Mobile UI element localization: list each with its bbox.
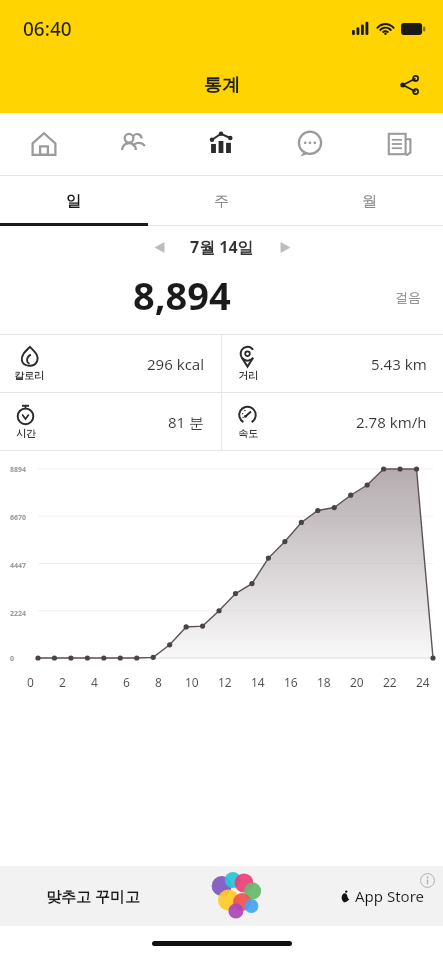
staticText: 8 [155,674,162,690]
button[interactable]: Friends [88,113,176,175]
staticText: 16 [284,674,298,690]
button[interactable]: Share [387,63,431,107]
button[interactable]: 월 [295,176,443,226]
button[interactable]: Statistics [176,113,265,175]
staticText: 일 [66,192,81,211]
button[interactable]: 속도 [222,393,443,450]
staticText: 주 [214,192,229,211]
button[interactable]: 맞추고 꾸미고 [0,866,443,926]
staticText: 296 kcal [147,354,205,374]
staticText: 18 [317,674,331,690]
button[interactable]: 칼로리 [0,335,221,392]
staticText: 10 [185,674,199,690]
staticText: 2 [59,674,66,690]
staticText: 20 [350,674,364,690]
button[interactable]: 일 [0,176,147,226]
staticText: 8894 [10,465,27,475]
staticText: 2224 [10,609,27,619]
button[interactable]: Chat [265,113,354,175]
staticText: 06:40 [23,16,72,42]
staticText: 0 [10,654,15,664]
staticText: 14 [251,674,265,690]
staticText: 4 [91,674,98,690]
staticText: 거리 [238,369,258,382]
staticText: 12 [218,674,232,690]
staticText: 6 [123,674,130,690]
button[interactable]: 주 [147,176,295,226]
button[interactable]: Previous day [142,230,176,264]
button[interactable]: 거리 [222,335,443,392]
staticText: 걸음 [395,289,421,305]
staticText: 0 [27,674,34,690]
button[interactable]: 시간 [0,393,221,450]
button[interactable]: Next day [268,230,302,264]
staticText: 5.43 km [371,354,427,374]
staticText: 맞추고 꾸미고 [46,886,140,906]
staticText: 월 [362,192,377,211]
staticText: 6670 [10,513,27,523]
staticText: 22 [383,674,397,690]
staticText: 81 분 [168,412,205,432]
staticText: 2.78 km/h [356,412,427,432]
staticText: App Store [355,886,425,906]
staticText: 칼로리 [14,369,44,382]
staticText: 7월 14일 [190,236,254,258]
staticText: 통계 [204,74,240,97]
button[interactable]: Ad info [417,870,437,890]
staticText: 24 [416,674,430,690]
staticText: 4447 [10,561,27,571]
staticText: 8,894 [133,269,231,321]
staticText: 속도 [238,427,258,440]
staticText: 시간 [16,427,36,440]
button[interactable]: Home [0,113,88,175]
button[interactable]: News [354,113,443,175]
